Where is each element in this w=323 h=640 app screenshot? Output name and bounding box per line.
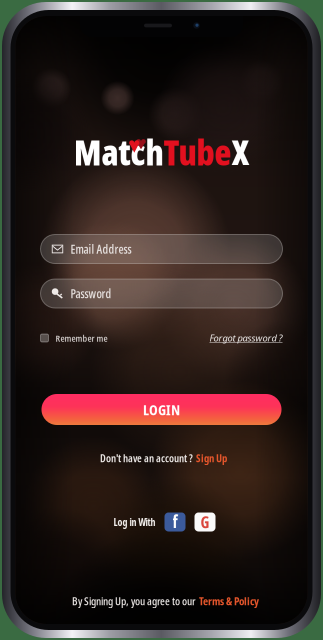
staticText: Password	[70, 285, 111, 302]
staticText: Terms & Policy	[199, 593, 259, 609]
button[interactable]: Terms & Policy	[199, 593, 259, 609]
button[interactable]: LOGIN	[41, 394, 281, 425]
button[interactable]: Password	[40, 279, 282, 308]
staticText: Forgot password ?	[209, 332, 282, 344]
staticText: G	[200, 511, 209, 533]
button[interactable]: Forgot password ?	[209, 332, 282, 344]
button[interactable]: Log in with Google	[194, 511, 215, 533]
button[interactable]: Email Address	[40, 234, 282, 263]
staticText: Remember me	[55, 331, 107, 345]
button[interactable]: Remember me	[40, 331, 107, 345]
staticText: Don't have an account ?	[100, 451, 193, 465]
staticText: Log in With	[113, 515, 155, 529]
staticText: By Signing Up, you agree to our	[72, 593, 196, 609]
button[interactable]: Sign Up	[196, 451, 227, 465]
staticText: Sign Up	[196, 451, 227, 465]
staticText: X	[231, 128, 249, 176]
staticText: Tube	[163, 128, 231, 176]
staticText: LOGIN	[143, 399, 180, 419]
staticText: Match	[73, 128, 163, 176]
staticText: Email Address	[70, 241, 131, 257]
staticText: f	[172, 510, 177, 533]
button[interactable]: Log in with Facebook	[164, 510, 185, 534]
